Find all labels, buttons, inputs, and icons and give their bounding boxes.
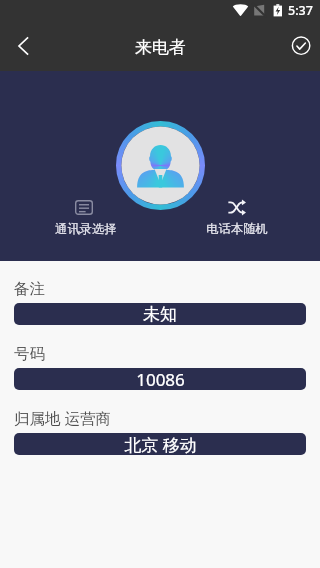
button[interactable]: 电话本随机	[206, 200, 268, 236]
button[interactable]: 北京 移动	[14, 433, 306, 455]
staticText: 号码	[14, 344, 45, 364]
staticText: 5:37	[288, 2, 313, 19]
staticText: 10086	[136, 368, 185, 390]
button[interactable]: 通讯录选择	[55, 200, 116, 236]
staticText: 电话本随机	[206, 221, 268, 236]
staticText: 通讯录选择	[55, 221, 116, 236]
staticText: 备注	[14, 279, 45, 299]
button[interactable]: Back	[0, 24, 46, 70]
staticText: 归属地 运营商	[14, 407, 112, 428]
button[interactable]: Confirm	[274, 24, 320, 70]
button[interactable]: 未知	[14, 303, 306, 325]
staticText: 北京 移动	[124, 433, 197, 455]
staticText: 来电者	[135, 37, 186, 58]
staticText: 未知	[143, 304, 177, 325]
button[interactable]: 10086	[14, 368, 306, 390]
